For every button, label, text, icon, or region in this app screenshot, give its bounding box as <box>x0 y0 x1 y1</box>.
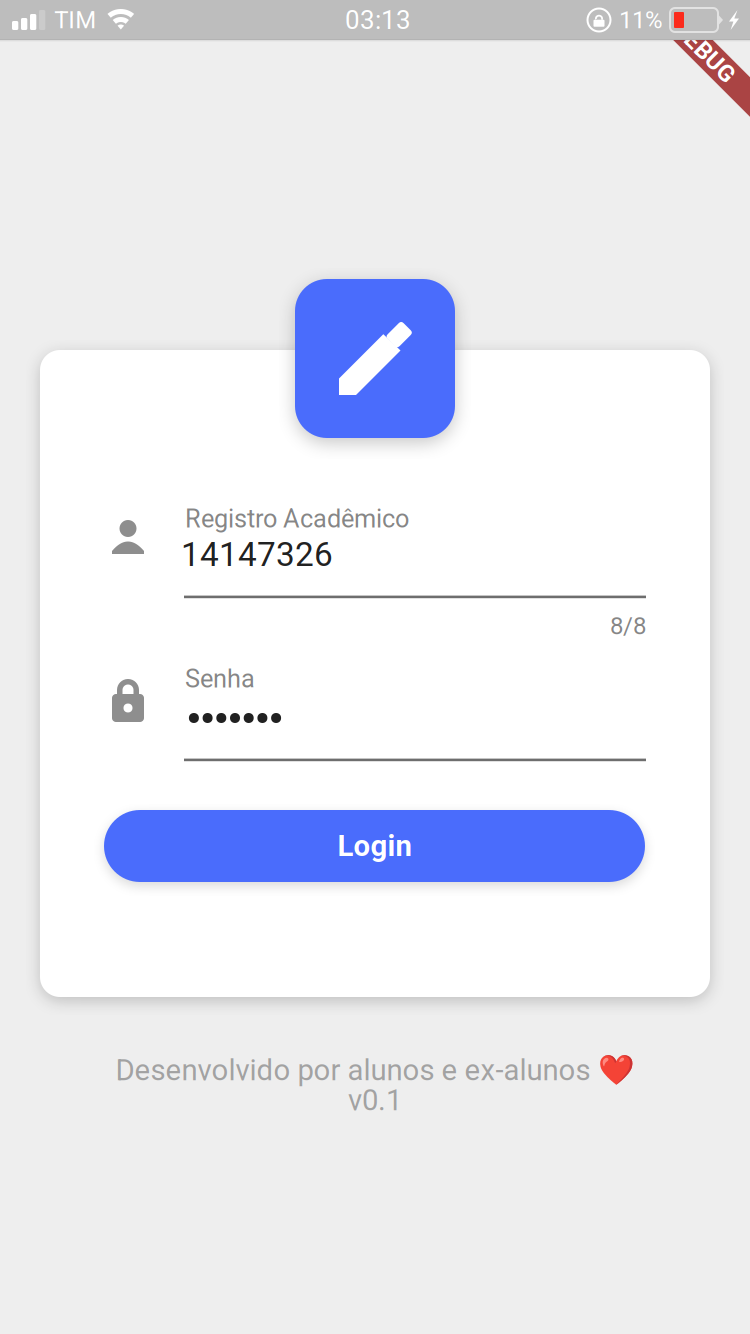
staticText: Login <box>337 829 411 863</box>
staticText: 03:13 <box>345 5 411 35</box>
staticText: Senha <box>185 664 255 694</box>
staticText: 14147326 <box>181 535 333 574</box>
staticText: TIM <box>54 6 96 34</box>
button[interactable]: Login <box>104 810 645 882</box>
staticText: Registro Acadêmico <box>185 504 409 534</box>
staticText: Desenvolvido por alunos e ex-alunos ❤️ <box>115 1053 634 1087</box>
staticText: 11% <box>619 6 663 34</box>
staticText: v0.1 <box>348 1083 402 1117</box>
staticText: DEBUG <box>669 28 746 56</box>
staticText: 8/8 <box>610 612 646 640</box>
